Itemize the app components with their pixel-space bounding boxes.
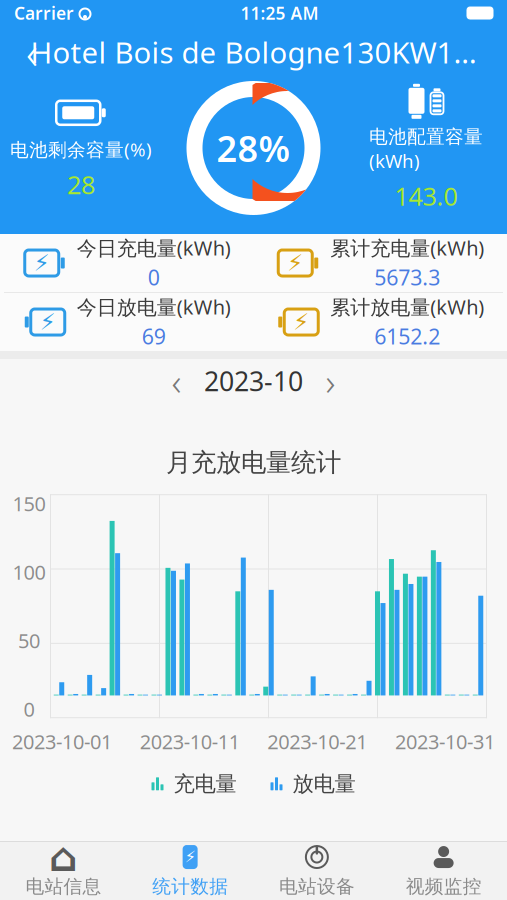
staticText: ⚡︎ — [34, 250, 50, 276]
staticText: 6152.2 — [374, 322, 440, 350]
staticText: 5673.3 — [374, 263, 440, 291]
button[interactable]: ⚡︎ — [0, 234, 253, 292]
staticText: 视频监控 — [406, 875, 482, 898]
staticText: ‹ — [26, 22, 38, 82]
button[interactable]: Previous month — [154, 361, 198, 401]
button[interactable]: ⚡︎ — [127, 842, 254, 900]
staticText: 累计充电量(kWh) — [330, 235, 484, 261]
staticText: 2023-10-31 — [395, 728, 495, 755]
staticText: ⚡︎ — [40, 309, 56, 335]
staticText: Carrier — [14, 1, 74, 24]
staticText: 统计数据 — [152, 875, 228, 898]
staticText: 充电量 — [173, 771, 236, 797]
staticText: 0 — [148, 263, 160, 291]
button[interactable]: ⚡︎ — [0, 293, 253, 351]
staticText: 电站设备 — [279, 875, 355, 898]
staticText: ⚡︎ — [287, 250, 303, 276]
staticText: 28% — [216, 124, 290, 172]
staticText: 0 — [23, 696, 34, 722]
button[interactable]: ⚡︎ — [253, 234, 507, 292]
staticText: 月充放电量统计 — [166, 447, 341, 478]
button[interactable]: Next month — [308, 361, 352, 401]
staticText: 2023-10-21 — [267, 728, 367, 755]
staticText: 放电量 — [292, 771, 355, 797]
staticText: 今日放电量(kWh) — [77, 294, 231, 320]
button[interactable]: Back — [10, 30, 54, 74]
staticText: 100 — [12, 559, 45, 585]
staticText: ‹ — [171, 356, 181, 406]
staticText: ⌂ — [49, 834, 78, 880]
staticText: ⚡︎ — [185, 848, 196, 866]
staticText: 69 — [142, 322, 166, 350]
staticText: 2023-10-01 — [12, 728, 112, 755]
staticText: 11:25 AM — [240, 1, 318, 24]
staticText: 累计放电量(kWh) — [330, 294, 484, 320]
staticText: 今日充电量(kWh) — [77, 235, 231, 261]
staticText: 电池剩余容量(%) — [10, 137, 152, 162]
staticText: 50 — [18, 627, 40, 654]
button[interactable]: ⚡︎ — [253, 293, 507, 351]
button[interactable]: 视频监控 — [380, 842, 507, 900]
button[interactable]: 电站设备 — [253, 842, 380, 900]
staticText: 电池配置容量(kWh) — [369, 125, 483, 173]
staticText: › — [325, 356, 335, 406]
staticText: 电站信息 — [25, 875, 101, 898]
staticText: Hotel Bois de Bologne130KW1… — [30, 32, 476, 71]
staticText: 143.0 — [394, 179, 457, 213]
staticText: 2023-10-11 — [140, 728, 240, 755]
button[interactable]: ⌂ — [0, 842, 127, 900]
staticText: ⚡︎ — [293, 309, 309, 335]
staticText: 28 — [67, 168, 95, 201]
staticText: 150 — [12, 490, 45, 517]
staticText: 2023-10 — [204, 363, 303, 399]
